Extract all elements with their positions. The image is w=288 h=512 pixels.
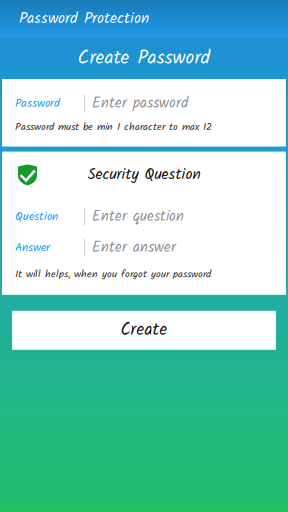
staticText: Create Password <box>77 43 210 74</box>
button[interactable]: Password <box>2 88 286 119</box>
button[interactable]: Answer <box>2 232 286 263</box>
staticText: Answer <box>15 238 50 257</box>
staticText: Password <box>15 94 60 113</box>
staticText: Security Question <box>87 163 200 187</box>
staticText: Enter question <box>92 205 184 228</box>
staticText: Password Protection <box>19 7 149 31</box>
staticText: Enter answer <box>92 236 176 259</box>
staticText: Question <box>15 207 58 226</box>
staticText: Create <box>120 317 167 344</box>
staticText: Enter password <box>92 92 188 115</box>
button[interactable]: Create <box>12 311 276 350</box>
button[interactable]: Question <box>2 201 286 232</box>
staticText: Password must be min 1 character to max … <box>15 119 212 136</box>
staticText: It will helps, when you forgot your pass… <box>15 266 211 283</box>
